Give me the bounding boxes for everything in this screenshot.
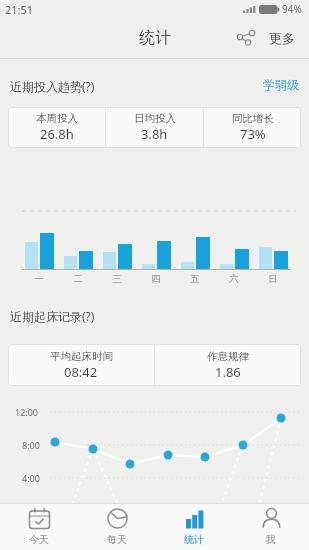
button[interactable]: 日均投入 <box>106 107 203 148</box>
button[interactable] <box>232 23 258 49</box>
staticText: 我 <box>266 533 276 546</box>
staticText: 六 <box>224 273 244 285</box>
button[interactable]: 今天 <box>0 504 78 550</box>
staticText: 26.8h <box>40 125 74 143</box>
staticText: 近期起床记录(?) <box>10 308 95 324</box>
staticText: 五 <box>185 273 205 285</box>
staticText: 二 <box>68 273 88 285</box>
staticText: 21:51 <box>5 2 34 17</box>
staticText: 一 <box>29 273 49 285</box>
staticText: 近期投入趋势(?) <box>10 78 95 94</box>
button[interactable]: 更多 <box>262 18 302 58</box>
staticText: 今天 <box>29 533 49 546</box>
staticText: 73% <box>240 125 266 143</box>
button[interactable]: 统计 <box>155 504 232 550</box>
staticText: 94% <box>282 2 302 16</box>
button[interactable]: 本周投入 <box>8 107 105 148</box>
staticText: 作息规律 <box>207 350 249 363</box>
staticText: 日均投入 <box>134 112 176 125</box>
button[interactable]: 同比增长 <box>204 107 301 148</box>
staticText: 统计 <box>184 533 204 546</box>
staticText: 同比增长 <box>232 112 274 125</box>
button[interactable]: 每天 <box>78 504 155 550</box>
staticText: 8:00 <box>22 439 40 451</box>
staticText: 四 <box>146 273 166 285</box>
button[interactable]: 平均起床时间 <box>8 344 154 386</box>
staticText: 三 <box>107 273 127 285</box>
staticText: 更多 <box>269 30 295 46</box>
staticText: 平均起床时间 <box>50 350 113 363</box>
button[interactable]: 我 <box>232 504 309 550</box>
staticText: 每天 <box>107 533 127 546</box>
staticText: 学弱级 <box>263 77 299 92</box>
staticText: 08:42 <box>64 363 98 381</box>
staticText: 3.8h <box>141 125 168 143</box>
staticText: 日 <box>263 273 283 285</box>
staticText: 4:00 <box>22 472 40 484</box>
staticText: 本周投入 <box>36 112 78 125</box>
button[interactable]: 学弱级 <box>0 72 309 96</box>
button[interactable]: 作息规律 <box>155 344 301 386</box>
staticText: 1.86 <box>215 363 241 381</box>
staticText: 统计 <box>139 28 171 48</box>
staticText: 12:00 <box>15 406 39 418</box>
